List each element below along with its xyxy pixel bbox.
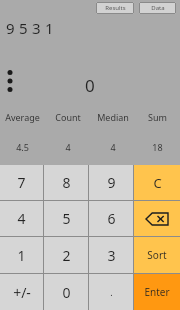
button[interactable]: 8 (44, 165, 88, 200)
button[interactable]: 7 (0, 165, 43, 200)
button[interactable]: 9 (89, 165, 133, 200)
staticText: Sort (147, 248, 167, 262)
staticText: 3 (32, 18, 41, 38)
staticText: Count (55, 111, 81, 123)
button[interactable]: Data (139, 2, 176, 14)
button[interactable]: Enter (134, 274, 180, 310)
staticText: Enter (144, 285, 170, 299)
staticText: 1 (17, 246, 26, 265)
button[interactable]: 0 (44, 274, 88, 310)
button[interactable]: More options (1, 66, 19, 96)
staticText: 8 (62, 173, 71, 192)
button[interactable]: 5 (44, 201, 88, 236)
button[interactable]: 3 (89, 237, 133, 273)
button[interactable]: C (134, 165, 180, 200)
staticText: 18 (152, 141, 163, 153)
staticText: +/- (13, 283, 31, 302)
button[interactable]: 2 (44, 237, 88, 273)
button[interactable]: Results (96, 2, 134, 14)
staticText: 5 (19, 18, 28, 38)
staticText: C (153, 174, 162, 192)
staticText: Median (97, 111, 129, 123)
staticText: 9 (107, 173, 116, 192)
staticText: 1 (45, 18, 54, 38)
button[interactable]: 4 (0, 201, 43, 236)
button[interactable]: . (89, 274, 133, 310)
staticText: 9 (6, 18, 15, 38)
staticText: 6 (107, 209, 116, 228)
button[interactable]: +/- (0, 274, 43, 310)
button[interactable]: 1 (0, 237, 43, 273)
staticText: Sum (148, 111, 167, 123)
staticText: Results (105, 4, 126, 12)
staticText: . (110, 286, 113, 298)
staticText: 3 (107, 246, 116, 265)
button[interactable]: 6 (89, 201, 133, 236)
button[interactable]: Sort (134, 237, 180, 273)
staticText: 4 (110, 141, 116, 153)
staticText: Average (5, 111, 40, 123)
staticText: Data (151, 4, 165, 12)
staticText: 0 (62, 283, 71, 302)
staticText: 4 (17, 209, 26, 228)
staticText: 7 (17, 173, 26, 192)
staticText: 5 (62, 209, 71, 228)
button[interactable]: Backspace (134, 201, 180, 236)
staticText: 0 (85, 74, 95, 97)
staticText: 4.5 (16, 141, 29, 153)
staticText: 4 (65, 141, 71, 153)
staticText: 2 (62, 246, 71, 265)
